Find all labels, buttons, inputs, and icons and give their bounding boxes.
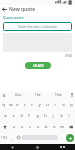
staticText: Quo (15, 93, 22, 97)
button[interactable]: The (28, 91, 48, 99)
button[interactable]: c (26, 121, 34, 132)
staticText: h (44, 113, 47, 119)
staticText: Enter the text / selection (18, 24, 57, 29)
button[interactable]: h (41, 110, 49, 121)
button[interactable]: SHARE (25, 62, 51, 69)
button[interactable]: Back (0, 5, 9, 14)
button[interactable]: i (51, 99, 59, 110)
staticText: New quote (9, 6, 36, 13)
button[interactable]: g (33, 110, 41, 121)
staticText: r (24, 102, 26, 108)
button[interactable]: n (50, 121, 58, 132)
staticText: b (45, 124, 48, 130)
staticText: n (53, 124, 56, 130)
button[interactable]: Enter (65, 132, 75, 143)
staticText: i (54, 102, 56, 108)
button[interactable]: r (21, 99, 28, 110)
staticText: o (62, 102, 65, 108)
staticText: p (70, 102, 73, 108)
staticText: c (29, 124, 32, 130)
staticText: ?123 (1, 136, 8, 140)
staticText: That (55, 93, 62, 97)
button[interactable]: l (65, 110, 73, 121)
button[interactable]: e (14, 99, 21, 110)
button[interactable]: s (9, 110, 17, 121)
button[interactable]: Home (25, 144, 50, 150)
button[interactable]: That (48, 91, 68, 99)
button[interactable]: v (34, 121, 42, 132)
button[interactable]: z (9, 121, 18, 132)
button[interactable]: Shift (0, 121, 9, 132)
button[interactable]: x (18, 121, 26, 132)
button[interactable]: j (49, 110, 57, 121)
staticText: a (4, 113, 7, 119)
button[interactable]: a (2, 110, 9, 121)
staticText: t (31, 102, 33, 108)
staticText: G (3, 93, 6, 98)
button[interactable]: b (42, 121, 50, 132)
button[interactable]: , (9, 132, 15, 143)
staticText: x (21, 124, 24, 130)
staticText: SHARE (33, 63, 44, 68)
button[interactable]: Translate (0, 91, 8, 99)
button[interactable]: o (59, 99, 67, 110)
button[interactable]: ?123 (0, 132, 9, 143)
button[interactable]: m (58, 121, 66, 132)
staticText: j (52, 113, 54, 119)
staticText: The (35, 93, 41, 97)
button[interactable]: Quo (8, 91, 28, 99)
button[interactable]: Backspace (66, 121, 75, 132)
button[interactable]: y (35, 99, 43, 110)
staticText: w (9, 102, 13, 108)
staticText: Quote source (3, 16, 24, 20)
button[interactable]: Voice input (68, 91, 75, 99)
staticText: v (37, 124, 40, 130)
staticText: z (13, 124, 15, 130)
button[interactable]: Enter the text / selection (3, 22, 72, 31)
button[interactable]: w (7, 99, 14, 110)
button[interactable]: d (17, 110, 25, 121)
button[interactable]: q (0, 99, 7, 110)
staticText: u (46, 102, 49, 108)
button[interactable]: u (43, 99, 51, 110)
button[interactable]: t (28, 99, 35, 110)
button[interactable]: Emoji (15, 132, 21, 143)
button[interactable]: Back (0, 144, 25, 150)
staticText: 0/500 (65, 54, 72, 58)
button[interactable]: p (67, 99, 75, 110)
staticText: k (60, 113, 63, 119)
staticText: q (2, 102, 5, 108)
staticText: y (38, 102, 41, 108)
staticText: m (60, 124, 64, 130)
staticText: g (36, 113, 39, 119)
staticText: s (12, 113, 15, 119)
staticText: , (11, 135, 13, 140)
staticText: l (68, 113, 70, 119)
staticText: . (61, 135, 63, 140)
button[interactable]: f (25, 110, 33, 121)
staticText: d (20, 113, 23, 119)
button[interactable]: Recents (50, 144, 75, 150)
staticText: f (28, 113, 30, 119)
button[interactable]: k (57, 110, 65, 121)
staticText: e (16, 102, 19, 108)
button[interactable]: . (59, 132, 65, 143)
